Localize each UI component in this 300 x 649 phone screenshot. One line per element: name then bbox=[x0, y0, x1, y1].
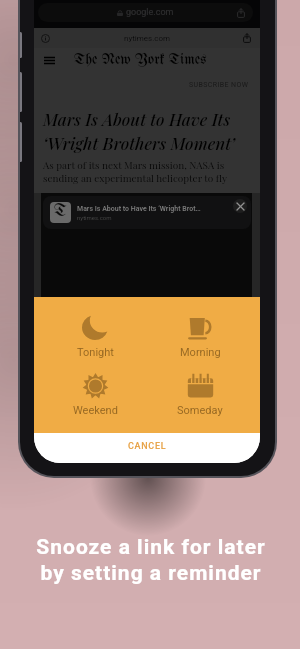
staticText: Someday bbox=[177, 404, 223, 417]
staticText: google.com bbox=[126, 7, 174, 18]
staticText: As part of its next Mars mission, NASA i… bbox=[43, 158, 227, 185]
button[interactable]: Morning bbox=[158, 315, 242, 361]
staticText: CANCEL bbox=[128, 441, 167, 452]
button[interactable]: Close bbox=[233, 199, 247, 213]
button[interactable]: Someday bbox=[158, 373, 242, 419]
staticText: nytimes.com bbox=[124, 34, 171, 43]
button[interactable]: Share page bbox=[242, 33, 252, 43]
staticText: Mars Is About to Have Its ‘Wright Brot… bbox=[77, 205, 201, 213]
button[interactable]: Share bbox=[236, 8, 246, 18]
staticText: Weekend bbox=[73, 404, 118, 417]
staticText: Mars Is About to Have Its ‘Wright Brothe… bbox=[43, 108, 235, 154]
staticText: T bbox=[54, 203, 67, 221]
button[interactable]: CANCEL bbox=[34, 433, 260, 459]
button[interactable]: Menu bbox=[44, 55, 55, 66]
button[interactable]: T bbox=[43, 196, 251, 229]
staticText: nytimes.com bbox=[77, 214, 112, 221]
staticText: Tonight bbox=[77, 346, 114, 359]
staticText: Morning bbox=[180, 346, 221, 359]
staticText: SUBSCRIBE NOW bbox=[189, 81, 249, 89]
button[interactable]: Weekend bbox=[53, 373, 137, 419]
staticText: The New York Times bbox=[74, 52, 207, 68]
button[interactable]: Tonight bbox=[53, 315, 137, 361]
staticText: Snooze a link for later by setting a rem… bbox=[1, 535, 300, 585]
